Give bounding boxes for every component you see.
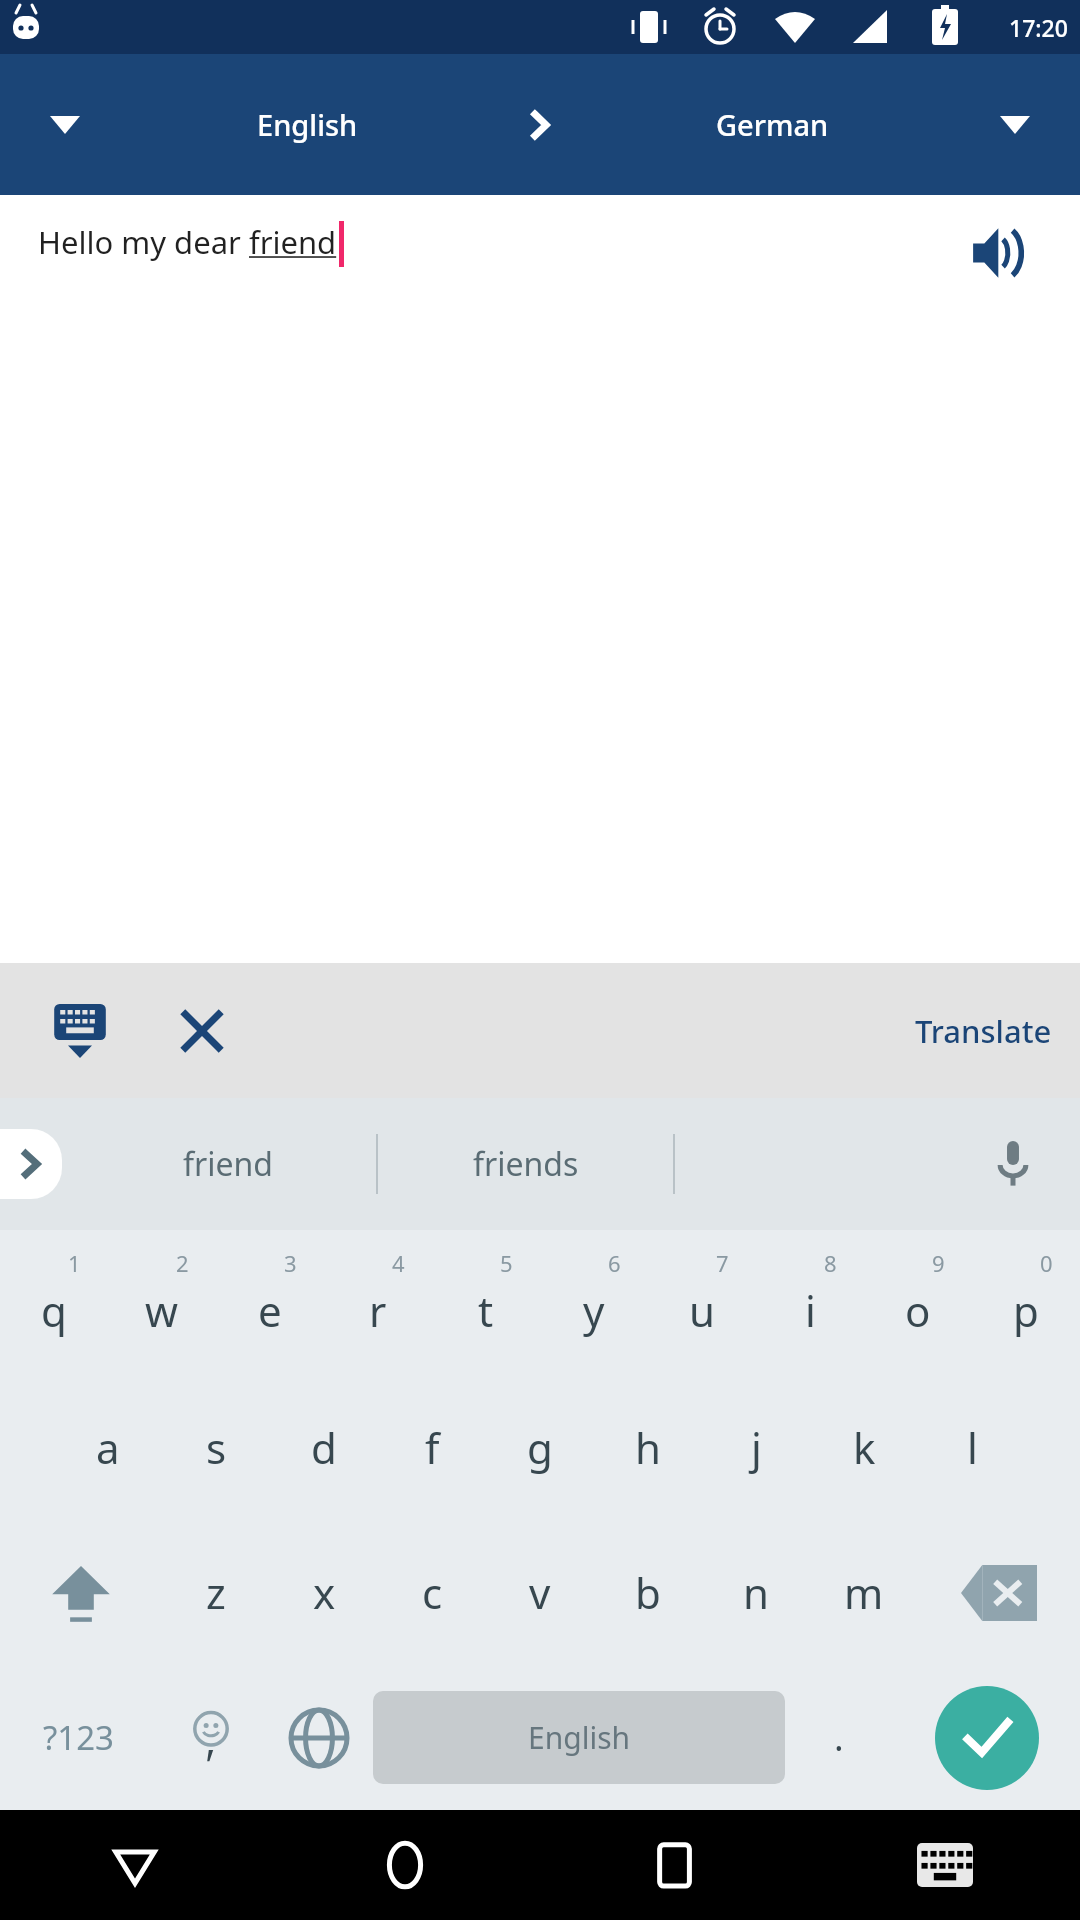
staticText: Translate [915,1010,1052,1052]
button[interactable]: Translate [887,963,1080,1098]
staticText: Hello my dear [38,221,249,263]
staticText: w [145,1282,179,1339]
staticText: . [834,1713,844,1762]
button[interactable]: Hide keyboard [38,989,122,1073]
button[interactable]: Emoji and comma [157,1665,265,1810]
staticText: l [967,1419,978,1476]
button[interactable]: friend [80,1098,376,1230]
staticText: g [527,1419,553,1476]
staticText: r [369,1282,387,1339]
staticText: a [96,1419,120,1476]
staticText: d [311,1419,337,1476]
staticText: j [751,1419,762,1476]
button[interactable]: English [373,1691,785,1784]
button[interactable]: ?123 [0,1665,157,1810]
button[interactable]: m [810,1520,918,1665]
staticText: o [905,1282,931,1339]
staticText: u [689,1282,715,1339]
button[interactable]: h [594,1375,702,1520]
button[interactable]: l [918,1375,1026,1520]
staticText: ?123 [43,1715,114,1760]
staticText: 5 [500,1248,513,1278]
staticText: n [743,1564,769,1621]
staticText: p [1013,1282,1039,1339]
staticText: x [313,1564,336,1621]
staticText: German [716,105,829,144]
button[interactable]: 5 [432,1230,540,1375]
staticText: m [844,1564,884,1621]
button[interactable]: b [594,1520,702,1665]
button[interactable]: Shift [0,1520,162,1665]
staticText: s [206,1419,227,1476]
button[interactable]: j [702,1375,810,1520]
button[interactable]: . [785,1665,893,1810]
button[interactable]: Target language menu [950,54,1080,195]
staticText: English [257,105,358,144]
staticText: i [805,1282,816,1339]
button[interactable]: x [270,1520,378,1665]
button[interactable]: Done [935,1686,1039,1790]
button[interactable]: a [54,1375,162,1520]
staticText: 8 [824,1248,837,1278]
button[interactable]: k [810,1375,918,1520]
button[interactable]: Expand suggestions [0,1129,62,1199]
staticText: v [529,1564,551,1621]
button[interactable]: d [270,1375,378,1520]
staticText: 7 [716,1248,729,1278]
button[interactable]: 0 [972,1230,1080,1375]
staticText: 9 [932,1248,945,1278]
staticText: b [635,1564,661,1621]
staticText: 1 [68,1248,81,1278]
button[interactable]: 4 [324,1230,432,1375]
staticText: z [206,1564,226,1621]
button[interactable]: 1 [0,1230,108,1375]
button[interactable]: z [162,1520,270,1665]
staticText: h [635,1419,661,1476]
button[interactable]: g [486,1375,594,1520]
button[interactable]: Voice input [978,1129,1048,1199]
staticText: e [258,1282,282,1339]
button[interactable]: 7 [648,1230,756,1375]
button[interactable]: s [162,1375,270,1520]
button[interactable]: c [378,1520,486,1665]
button[interactable]: Home [270,1810,540,1920]
button[interactable]: Clear text [160,989,244,1073]
button[interactable]: 9 [864,1230,972,1375]
button[interactable]: Back [0,1810,270,1920]
staticText: y [583,1282,605,1339]
staticText: 17:20 [1009,12,1068,43]
button[interactable]: 3 [216,1230,324,1375]
staticText: q [41,1282,67,1339]
staticText: k [853,1419,876,1476]
staticText: friends [473,1142,579,1186]
staticText: English [528,1717,631,1758]
button[interactable]: Change keyboard language [265,1665,373,1810]
staticText: 3 [284,1248,297,1278]
button[interactable]: Backspace [918,1520,1080,1665]
button[interactable]: 2 [108,1230,216,1375]
button[interactable]: Swap languages [485,54,595,195]
staticText: c [422,1564,443,1621]
staticText: friend [183,1142,273,1186]
button[interactable]: German [595,54,950,195]
staticText: t [478,1282,494,1339]
button[interactable]: friends [378,1098,673,1230]
button[interactable]: Speak text [968,221,1032,285]
staticText: 6 [608,1248,621,1278]
staticText: 2 [176,1248,189,1278]
button[interactable]: Source language menu [0,54,130,195]
staticText: 0 [1040,1248,1053,1278]
button[interactable]: Recent apps [540,1810,810,1920]
button[interactable]: f [378,1375,486,1520]
staticText: friend [249,221,337,263]
button[interactable]: v [486,1520,594,1665]
button[interactable]: 8 [756,1230,864,1375]
staticText: f [425,1419,440,1476]
staticText: 4 [392,1248,405,1278]
button[interactable]: n [702,1520,810,1665]
button[interactable]: Switch keyboard [810,1810,1080,1920]
button[interactable]: English [130,54,485,195]
button[interactable]: 6 [540,1230,648,1375]
